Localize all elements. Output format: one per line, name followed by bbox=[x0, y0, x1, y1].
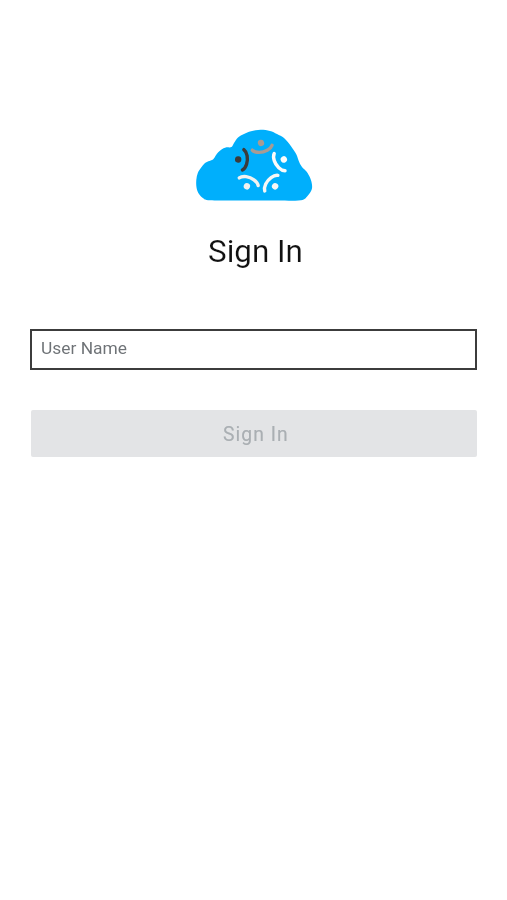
button[interactable]: User Name bbox=[30, 329, 477, 370]
staticText: User Name bbox=[41, 338, 128, 358]
button[interactable]: Sign In bbox=[31, 410, 477, 457]
other: App logo bbox=[196, 130, 313, 202]
staticText: Sign In bbox=[223, 423, 289, 446]
staticText: Sign In bbox=[208, 233, 303, 270]
